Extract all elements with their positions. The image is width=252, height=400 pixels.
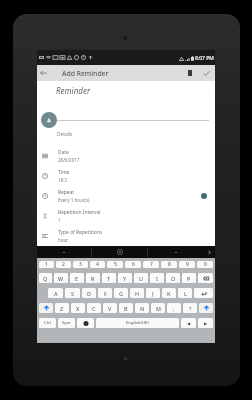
button[interactable]: P [182, 273, 196, 283]
staticText: X [76, 305, 80, 312]
staticText: F [104, 290, 107, 297]
button[interactable]: Z [55, 303, 69, 313]
button[interactable]: ◀ [181, 318, 196, 328]
button[interactable]: 2 [56, 261, 71, 268]
button[interactable]: Date [37, 146, 215, 166]
staticText: 18:3 [58, 177, 67, 183]
staticText: J [152, 290, 154, 297]
staticText: Type of Repetitions [58, 229, 103, 236]
staticText: 5 [114, 261, 117, 268]
staticText: O [171, 275, 176, 282]
staticText: Z [60, 305, 64, 312]
button[interactable]: R [86, 273, 100, 283]
staticText: 9 [186, 261, 189, 268]
staticText: 28/6/2017 [58, 157, 80, 163]
staticText: T [107, 275, 111, 282]
button[interactable]: Backspace [198, 273, 213, 283]
button[interactable]: M [151, 303, 165, 313]
button[interactable]: ▶ [198, 318, 213, 328]
button[interactable]: G [114, 288, 128, 298]
staticText: Every 1 hour(s) [58, 197, 90, 203]
button[interactable]: More suggestions [203, 246, 215, 258]
button[interactable]: Sym [58, 318, 75, 328]
button[interactable]: 3 [73, 261, 88, 268]
staticText: V [108, 305, 112, 312]
staticText: W [58, 275, 64, 282]
button[interactable]: N [135, 303, 149, 313]
button[interactable]: E [70, 273, 84, 283]
button[interactable]: ? [183, 303, 197, 313]
button[interactable]: B [119, 303, 133, 313]
button[interactable]: English(UK) [96, 318, 179, 328]
staticText: 6 [132, 261, 135, 268]
staticText: 7 [150, 261, 153, 268]
button[interactable]: F [98, 288, 112, 298]
button[interactable]: 1 [39, 261, 54, 268]
staticText: H [135, 290, 140, 297]
staticText: L [184, 290, 187, 297]
button[interactable]: O [166, 273, 180, 283]
button[interactable]: J [146, 288, 160, 298]
button[interactable]: 8 [161, 261, 177, 268]
staticText: 1 [58, 217, 61, 223]
staticText: English(UK) [126, 320, 149, 326]
button[interactable]: D [82, 288, 96, 298]
staticText: ? [189, 305, 192, 312]
staticText: 8 [168, 261, 171, 268]
button[interactable]: Type of Repetitions [37, 226, 215, 246]
button[interactable]: V [103, 303, 117, 313]
button[interactable]: I [150, 273, 164, 283]
button[interactable]: T [102, 273, 116, 283]
button[interactable]: Enter [194, 288, 213, 298]
staticText: , [173, 305, 175, 312]
button[interactable]: A [48, 288, 63, 298]
staticText: Y [123, 275, 127, 282]
button[interactable]: U [134, 273, 148, 283]
staticText: R [91, 275, 95, 282]
staticText: E [75, 275, 79, 282]
button[interactable]: Shift [39, 303, 53, 313]
button[interactable]: W [54, 273, 68, 283]
staticText: U [139, 275, 143, 282]
button[interactable]: Repeat toggle [201, 193, 207, 199]
button[interactable]: Y [118, 273, 132, 283]
button[interactable]: H [130, 288, 144, 298]
button[interactable]: 6 [125, 261, 141, 268]
button[interactable]: Ctrl [39, 318, 56, 328]
button[interactable]: S [65, 288, 80, 298]
button[interactable]: Repetition Interval [37, 206, 215, 226]
button[interactable]: Save [197, 65, 215, 81]
staticText: C [92, 305, 96, 312]
staticText: 3 [79, 261, 82, 268]
button[interactable]: Time [37, 166, 215, 186]
staticText: N [140, 305, 145, 312]
button[interactable]: K [162, 288, 176, 298]
button[interactable]: Delete [183, 65, 197, 81]
button[interactable]: 7 [143, 261, 159, 268]
button[interactable]: Shift [199, 303, 213, 313]
staticText: A [54, 290, 58, 297]
button[interactable]: Emoji [77, 318, 94, 328]
staticText: P [187, 275, 191, 282]
button[interactable]: , [167, 303, 181, 313]
button[interactable]: 5 [107, 261, 123, 268]
staticText: 2 [62, 261, 65, 268]
button[interactable]: X [71, 303, 85, 313]
staticText: 0 [204, 261, 207, 268]
button[interactable]: 9 [179, 261, 195, 268]
button[interactable]: L [178, 288, 192, 298]
staticText: Repeat [58, 189, 75, 196]
button[interactable]: Progress slider [41, 112, 57, 128]
staticText: K [167, 290, 171, 297]
staticText: Reminder [56, 85, 91, 96]
button[interactable]: Repeat [37, 186, 215, 206]
staticText: M [156, 305, 161, 312]
button[interactable]: Back [37, 65, 49, 81]
staticText: Details [57, 131, 73, 138]
button[interactable]: 4 [90, 261, 105, 268]
button[interactable]: Q [39, 273, 52, 283]
button[interactable]: 0 [197, 261, 213, 268]
staticText: 1 [45, 261, 48, 268]
staticText: Add Reminder [62, 69, 109, 78]
button[interactable]: C [87, 303, 101, 313]
